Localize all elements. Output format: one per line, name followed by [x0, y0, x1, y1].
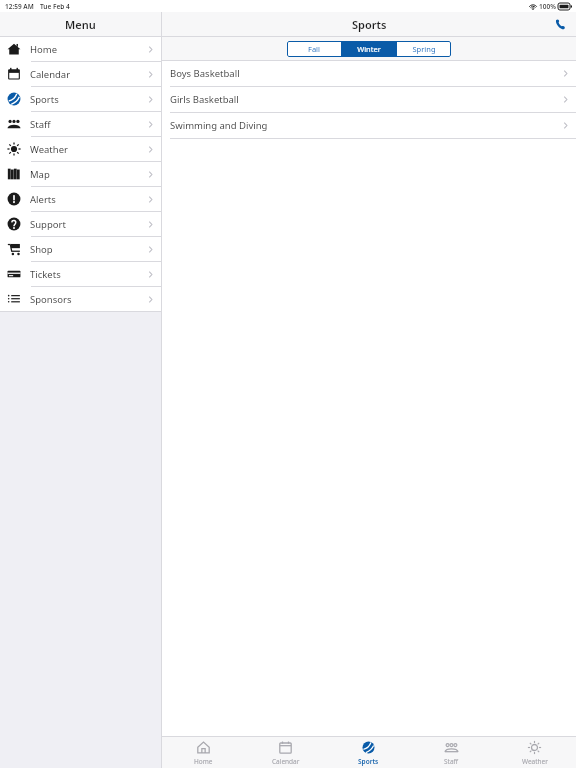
button[interactable]: Calendar — [0, 62, 161, 86]
button[interactable]: Home — [162, 737, 244, 768]
button[interactable]: Sports — [327, 737, 410, 768]
staticText: Sports — [30, 93, 59, 106]
button[interactable]: Map — [0, 162, 161, 186]
button[interactable]: Boys Basketball — [162, 61, 576, 86]
staticText: Alerts — [30, 193, 56, 206]
button[interactable]: Sponsors — [0, 287, 161, 311]
staticText: Menu — [65, 17, 96, 32]
staticText: Home — [194, 757, 213, 766]
button[interactable]: Call — [552, 16, 568, 32]
button[interactable]: Support — [0, 212, 161, 236]
staticText: Spring — [412, 44, 436, 54]
staticText: Support — [30, 218, 66, 231]
staticText: Sponsors — [30, 293, 72, 306]
staticText: Home — [30, 43, 58, 56]
staticText: Swimming and Diving — [170, 119, 268, 132]
button[interactable]: Swimming and Diving — [162, 113, 576, 138]
staticText: Fall — [308, 44, 320, 54]
staticText: Calendar — [272, 757, 300, 766]
button[interactable]: Fall — [287, 41, 341, 57]
button[interactable]: Weather — [493, 737, 576, 768]
staticText: Shop — [30, 243, 53, 256]
staticText: Staff — [30, 118, 51, 131]
button[interactable]: Alerts — [0, 187, 161, 211]
staticText: Calendar — [30, 68, 71, 81]
staticText: Tue Feb 4 — [40, 2, 70, 11]
staticText: Sports — [358, 757, 379, 766]
button[interactable]: Tickets — [0, 262, 161, 286]
button[interactable]: Shop — [0, 237, 161, 261]
staticText: 100% — [539, 2, 556, 11]
button[interactable]: Spring — [397, 41, 451, 57]
staticText: Map — [30, 168, 50, 181]
staticText: 12:59 AM — [5, 2, 34, 11]
button[interactable]: Calendar — [244, 737, 327, 768]
button[interactable]: Winter — [342, 41, 396, 57]
staticText: Weather — [522, 757, 548, 766]
button[interactable]: Sports — [0, 87, 161, 111]
staticText: Tickets — [30, 268, 61, 281]
button[interactable]: Weather — [0, 137, 161, 161]
staticText: Boys Basketball — [170, 67, 240, 80]
button[interactable]: Staff — [410, 737, 493, 768]
button[interactable]: Staff — [0, 112, 161, 136]
button[interactable]: Home — [0, 37, 161, 61]
staticText: Staff — [444, 757, 459, 766]
staticText: Girls Basketball — [170, 93, 239, 106]
staticText: Sports — [352, 17, 387, 32]
staticText: Winter — [357, 44, 381, 54]
button[interactable]: Girls Basketball — [162, 87, 576, 112]
staticText: Weather — [30, 143, 68, 156]
